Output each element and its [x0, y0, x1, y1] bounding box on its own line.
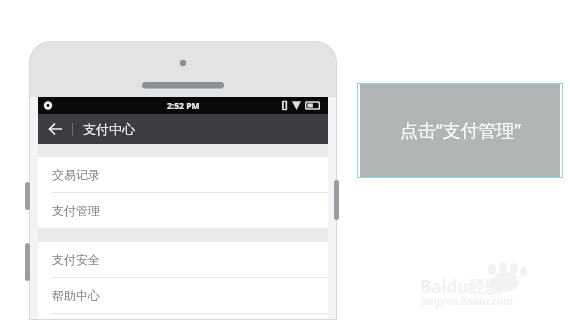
staticText: jingyan.baidu.com: [421, 294, 513, 308]
staticText: 支付管理: [52, 203, 100, 218]
button[interactable]: 交易记录: [38, 157, 328, 192]
staticText: 2:52 PM: [167, 100, 200, 112]
staticText: 支付安全: [52, 252, 100, 267]
staticText: 帮助中心: [52, 288, 100, 303]
button[interactable]: 支付安全: [38, 242, 328, 277]
button[interactable]: 点击“支付管理”: [360, 84, 560, 177]
staticText: Baidu经验: [420, 275, 503, 298]
button[interactable]: 支付管理: [38, 193, 328, 228]
staticText: 交易记录: [52, 167, 100, 182]
button[interactable]: Back: [38, 114, 72, 144]
button[interactable]: 帮助中心: [38, 278, 328, 313]
staticText: 点击“支付管理”: [400, 118, 521, 143]
staticText: 支付中心: [83, 121, 135, 137]
